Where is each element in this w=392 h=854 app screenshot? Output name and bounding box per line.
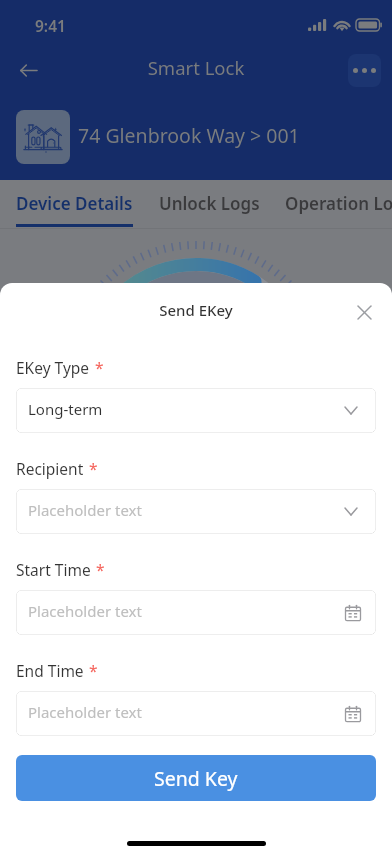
staticText: 74 Glenbrook Way > 001 — [78, 122, 300, 149]
staticText: 9:41 — [35, 15, 66, 36]
staticText: * — [89, 458, 98, 479]
button[interactable]: Placeholder text — [16, 691, 376, 736]
staticText: EKey Type — [16, 357, 90, 378]
staticText: Send EKey — [0, 300, 392, 320]
button[interactable]: Device Details — [16, 192, 133, 215]
staticText: * — [96, 559, 105, 580]
staticText: Start Time — [16, 559, 91, 580]
staticText: * — [89, 660, 98, 681]
staticText: Send Key — [154, 765, 238, 792]
button[interactable]: Placeholder text — [16, 489, 376, 534]
staticText: End Time — [16, 660, 84, 681]
staticText: Placeholder text — [28, 702, 142, 722]
button[interactable]: Close — [352, 300, 376, 324]
staticText: Placeholder text — [28, 500, 142, 520]
staticText: Recipient — [16, 458, 84, 479]
button[interactable]: Back — [12, 54, 44, 86]
staticText: * — [95, 357, 104, 378]
button[interactable]: Send Key — [16, 755, 376, 801]
button[interactable]: Operation Logs — [285, 192, 392, 215]
staticText: Device Details — [16, 192, 133, 215]
button[interactable]: Unlock Logs — [159, 192, 260, 215]
button[interactable]: Placeholder text — [16, 590, 376, 635]
staticText: Long-term — [28, 399, 103, 419]
staticText: Smart Lock — [0, 55, 392, 80]
button[interactable]: More options — [348, 54, 381, 87]
staticText: Placeholder text — [28, 601, 142, 621]
button[interactable]: Long-term — [16, 388, 376, 433]
staticText: Unlock Logs — [159, 192, 260, 215]
staticText: Operation Logs — [285, 192, 392, 215]
